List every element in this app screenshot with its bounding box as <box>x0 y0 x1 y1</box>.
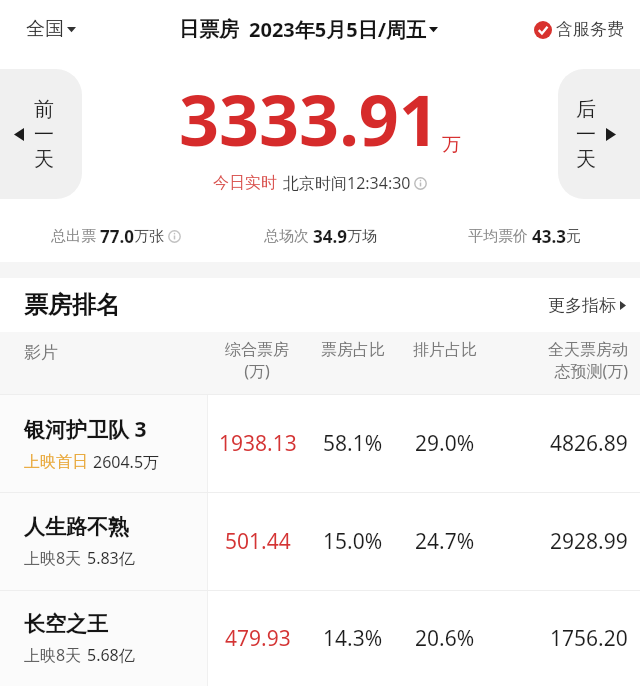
staticText: 34.9 <box>313 225 347 248</box>
staticText: 总场次 <box>264 227 309 246</box>
staticText: 天 <box>34 147 54 172</box>
staticText: 排片占比 <box>413 340 477 360</box>
button[interactable]: 全国 <box>26 17 76 41</box>
staticText: 2023年5月5日/周五 <box>249 16 426 43</box>
staticText: 人生路不熟 <box>24 514 129 540</box>
staticText: 479.93 <box>225 624 291 653</box>
staticText: 1938.13 <box>219 429 297 458</box>
staticText: 3333.91 <box>179 71 439 166</box>
staticText: 元 <box>566 227 581 246</box>
staticText: 24.7% <box>415 527 475 556</box>
staticText: 上映8天 <box>24 644 82 666</box>
staticText: 20.6% <box>415 624 475 653</box>
button[interactable]: 银河护卫队 3 <box>0 395 640 492</box>
staticText: 29.0% <box>415 429 475 458</box>
staticText: 2928.99 <box>550 527 628 556</box>
staticText: 综合票房 (万) <box>225 340 289 382</box>
staticText: 含服务费 <box>556 19 624 40</box>
staticText: 14.3% <box>323 624 383 653</box>
staticText: 1756.20 <box>550 624 628 653</box>
staticText: 银河护卫队 3 <box>24 415 147 444</box>
button[interactable]: 含服务费 <box>534 19 624 40</box>
button[interactable]: 更多指标 <box>548 295 626 316</box>
button[interactable]: 日票房 <box>179 16 438 43</box>
staticText: 15.0% <box>323 527 383 556</box>
staticText: 平均票价 <box>468 227 528 246</box>
staticText: 43.3 <box>532 225 566 248</box>
staticText: 票房排名 <box>24 290 120 320</box>
staticText: 前 <box>34 97 54 122</box>
staticText: 上映首日 <box>24 452 88 472</box>
staticText: 5.68亿 <box>87 644 135 666</box>
staticText: 全天票房动 态预测(万) <box>548 340 628 382</box>
staticText: 77.0 <box>100 225 134 248</box>
staticText: 万 <box>442 133 461 157</box>
staticText: 一 <box>576 122 596 147</box>
staticText: 2604.5万 <box>93 451 160 473</box>
staticText: 北京时间12:34:30 <box>283 172 411 194</box>
button[interactable]: 后 <box>558 69 640 199</box>
staticText: 58.1% <box>323 429 383 458</box>
button[interactable]: 长空之王 <box>0 591 640 686</box>
staticText: 后 <box>576 97 596 122</box>
staticText: 上映8天 <box>24 547 82 569</box>
staticText: 影片 <box>24 342 58 363</box>
staticText: 4826.89 <box>550 429 628 458</box>
staticText: 长空之王 <box>24 611 108 637</box>
staticText: 日票房 <box>179 17 239 42</box>
staticText: 一 <box>34 122 54 147</box>
staticText: 更多指标 <box>548 295 616 316</box>
staticText: 501.44 <box>225 527 291 556</box>
staticText: 万场 <box>347 227 377 246</box>
staticText: 万张 <box>134 227 164 246</box>
button[interactable]: 人生路不熟 <box>0 493 640 590</box>
staticText: 5.83亿 <box>87 547 135 569</box>
staticText: 总出票 <box>51 227 96 246</box>
staticText: 天 <box>576 147 596 172</box>
staticText: 全国 <box>26 17 64 41</box>
button[interactable]: 前 <box>0 69 82 199</box>
staticText: 今日实时 <box>213 173 277 193</box>
staticText: 票房占比 <box>321 340 385 360</box>
